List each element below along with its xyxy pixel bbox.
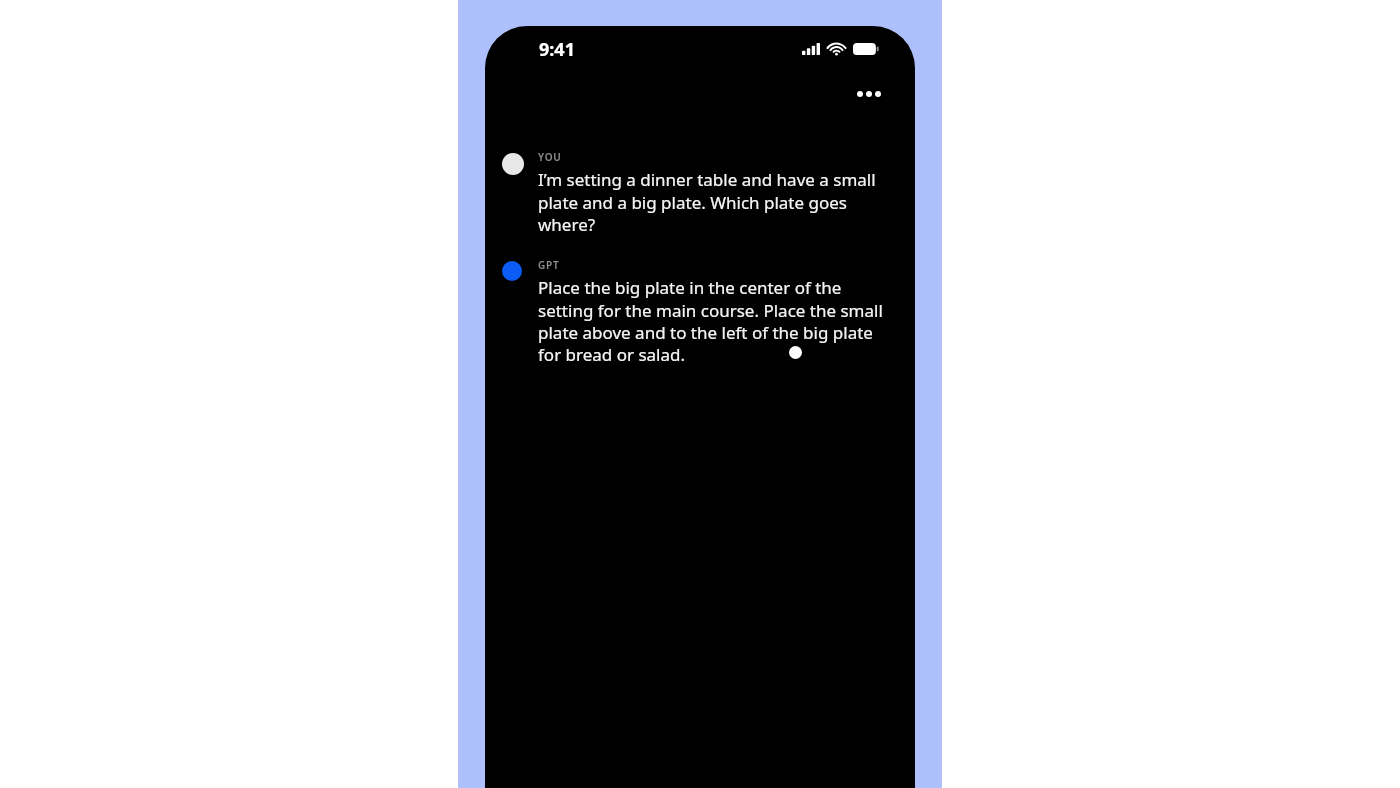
staticText: I’m setting a dinner table and have a sm… <box>538 168 888 236</box>
staticText: 9:41 <box>539 37 575 62</box>
staticText: YOU <box>538 150 562 164</box>
button[interactable]: More options <box>849 74 889 114</box>
button[interactable]: GPT <box>485 258 915 366</box>
button[interactable]: YOU <box>485 150 915 236</box>
staticText: Place the big plate in the center of the… <box>538 276 888 366</box>
staticText: GPT <box>538 258 560 272</box>
